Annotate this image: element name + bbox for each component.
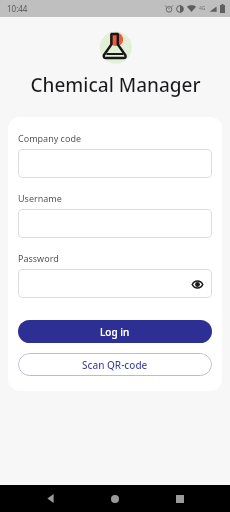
staticText: Password (18, 252, 59, 264)
button[interactable] (18, 149, 212, 178)
staticText: 10:44 (7, 3, 28, 14)
staticText: 4G (199, 5, 206, 12)
staticText: Scan QR-code (82, 358, 148, 372)
staticText: Log in (100, 325, 130, 339)
button[interactable]: Show password (189, 276, 205, 292)
button[interactable]: Back (35, 485, 65, 512)
button[interactable]: Scan QR-code (18, 353, 212, 376)
button[interactable]: Show password (18, 269, 212, 298)
staticText: Company code (18, 132, 82, 144)
staticText: Username (18, 192, 62, 204)
button[interactable]: Home (100, 485, 130, 512)
button[interactable]: Recent apps (165, 485, 195, 512)
button[interactable] (18, 209, 212, 238)
button[interactable]: Log in (18, 320, 212, 343)
staticText: Chemical Manager (30, 72, 201, 98)
